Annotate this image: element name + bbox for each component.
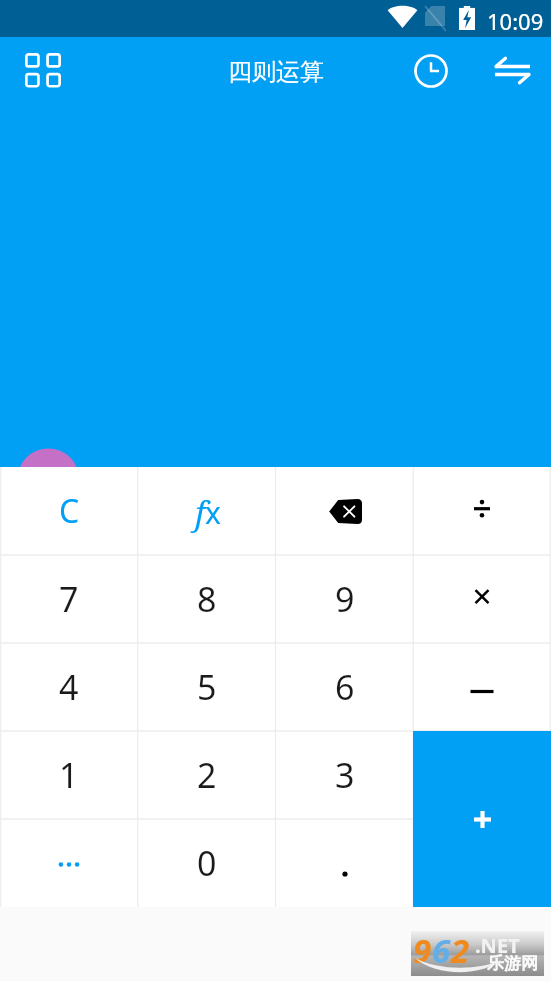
button[interactable]: 1 xyxy=(0,731,138,819)
button[interactable]: 4 xyxy=(0,643,138,731)
staticText: 6 xyxy=(335,664,355,710)
staticText: 3 xyxy=(335,752,355,798)
staticText: 7 xyxy=(59,576,79,622)
button[interactable]: Divide xyxy=(413,467,551,555)
button[interactable]: Menu xyxy=(9,37,76,104)
button[interactable]: History xyxy=(402,42,459,99)
staticText: 4 xyxy=(59,664,79,710)
button[interactable]: Minus xyxy=(413,643,551,731)
button[interactable]: 7 xyxy=(0,555,138,643)
staticText: 1 xyxy=(59,752,79,798)
staticText: f xyxy=(195,491,206,535)
staticText: 2 xyxy=(451,928,470,973)
staticText: 8 xyxy=(197,576,217,622)
staticText: 10:09 xyxy=(487,6,544,36)
staticText: 2 xyxy=(197,752,217,798)
button[interactable]: 5 xyxy=(138,643,276,731)
button[interactable]: 6 xyxy=(276,643,414,731)
button[interactable]: 0 xyxy=(138,819,276,907)
button[interactable]: Backspace xyxy=(276,467,414,555)
button[interactable]: Decimal point xyxy=(276,819,414,907)
staticText: 乐游网 xyxy=(487,953,538,974)
button[interactable]: C xyxy=(0,467,138,555)
staticText: C xyxy=(59,489,80,533)
staticText: 6 xyxy=(432,928,451,973)
button[interactable]: Multiply xyxy=(413,555,551,643)
button[interactable]: More xyxy=(0,819,138,907)
staticText: 四则运算 xyxy=(228,57,324,87)
button[interactable]: 3 xyxy=(276,731,414,819)
staticText: .NET xyxy=(475,932,520,959)
button[interactable]: Plus xyxy=(413,731,551,907)
button[interactable]: Swap xyxy=(483,42,540,99)
staticText: 9 xyxy=(413,928,432,973)
staticText: 0 xyxy=(197,840,217,886)
staticText: 9 xyxy=(335,576,355,622)
staticText: 5 xyxy=(197,664,217,710)
button[interactable]: 8 xyxy=(138,555,276,643)
button[interactable]: 9 xyxy=(276,555,414,643)
button[interactable]: 2 xyxy=(138,731,276,819)
staticText: x xyxy=(205,492,221,533)
button[interactable]: Functions xyxy=(138,467,276,555)
